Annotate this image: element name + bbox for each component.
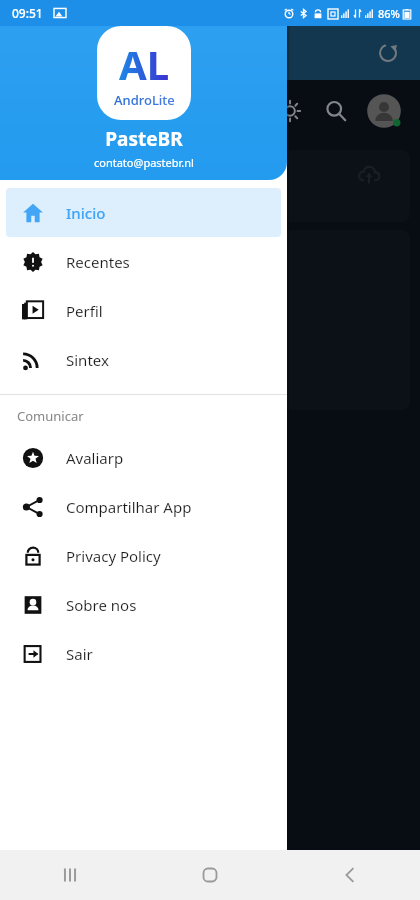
staticText: Comunicar <box>17 407 84 425</box>
button[interactable]: Home <box>140 850 280 900</box>
staticText: PasteBR <box>105 126 183 152</box>
staticText: AndroLite <box>114 91 175 109</box>
button[interactable]: Refresh <box>372 37 404 69</box>
staticText: 09:51 <box>12 5 43 21</box>
staticText: Inicio <box>66 203 106 223</box>
staticText: Sintex <box>66 350 109 370</box>
staticText: Sair <box>66 644 93 664</box>
staticText: contato@pastebr.nl <box>94 155 194 170</box>
button[interactable]: Compartilhar App <box>6 482 281 531</box>
staticText: Recentes <box>66 252 130 272</box>
staticText: Perfil <box>66 301 103 321</box>
staticText: AL <box>119 37 170 91</box>
button[interactable]: Privacy Policy <box>6 531 281 580</box>
staticText: Compartilhar App <box>66 497 192 517</box>
button[interactable] <box>10 150 410 222</box>
button[interactable]: Recentes <box>6 237 281 286</box>
staticText: Sobre nos <box>66 595 137 615</box>
button[interactable]: Avaliarp <box>6 433 281 482</box>
button[interactable] <box>10 230 410 410</box>
button[interactable]: Sobre nos <box>6 580 281 629</box>
button[interactable]: Brightness <box>270 91 310 131</box>
button[interactable]: Inicio <box>6 188 281 237</box>
staticText: Privacy Policy <box>66 546 161 566</box>
staticText: 86% <box>378 6 400 21</box>
button[interactable]: Search <box>316 91 356 131</box>
button[interactable]: Sair <box>6 629 281 678</box>
button[interactable]: Profile <box>362 89 406 133</box>
button[interactable]: Recent apps <box>0 850 140 900</box>
button[interactable]: Back <box>280 850 420 900</box>
button[interactable]: Perfil <box>6 286 281 335</box>
staticText: Avaliarp <box>66 448 124 468</box>
button[interactable]: Sintex <box>6 335 281 384</box>
